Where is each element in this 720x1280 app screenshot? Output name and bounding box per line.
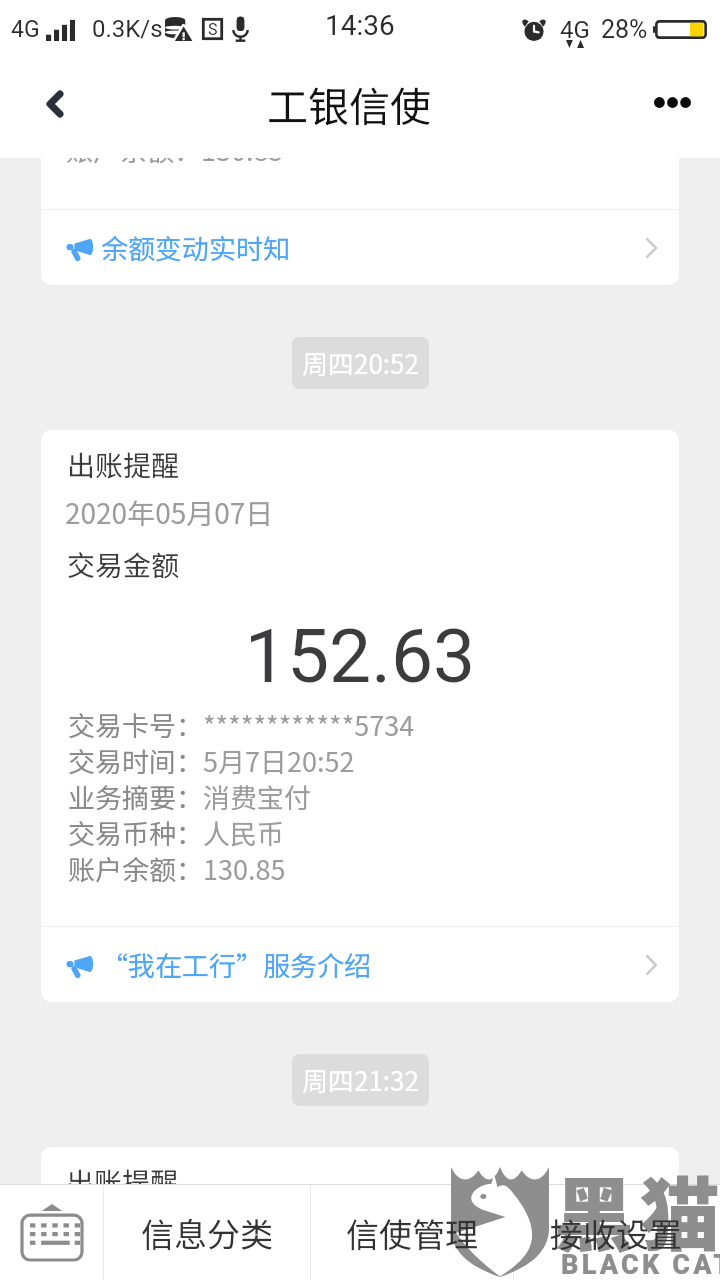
- staticText: 0.3K/s: [92, 15, 163, 43]
- staticText: 接收设置: [550, 1209, 682, 1257]
- button[interactable]: 余额变动实时知: [41, 210, 679, 285]
- staticText: 交易时间：: [68, 741, 203, 780]
- staticText: 交易金额: [67, 544, 180, 585]
- staticText: 工银信使: [267, 74, 431, 133]
- staticText: 出账提醒: [67, 444, 180, 485]
- staticText: 黑猫: [554, 1151, 720, 1267]
- staticText: 账户余额：130.85: [66, 130, 284, 169]
- staticText: 4G: [560, 16, 590, 44]
- staticText: 交易卡号：: [68, 705, 203, 744]
- staticText: 4G: [11, 16, 40, 43]
- staticText: BLACK CAT: [561, 1249, 720, 1280]
- staticText: 28%: [601, 15, 648, 44]
- staticText: 14:36: [325, 9, 395, 42]
- staticText: 信使管理: [346, 1209, 478, 1257]
- staticText: 余额变动实时知: [101, 228, 290, 267]
- staticText: 业务摘要：: [68, 777, 203, 816]
- staticText: 信息分类: [141, 1209, 273, 1257]
- staticText: 周四21:32: [302, 1061, 419, 1099]
- button[interactable]: Keyboard: [0, 1185, 103, 1280]
- staticText: 交易币种：: [68, 813, 203, 852]
- staticText: 账户余额：: [68, 849, 203, 888]
- staticText: 人民币: [203, 813, 284, 852]
- staticText: 消费宝付: [203, 777, 311, 816]
- button[interactable]: “我在工行”服务介绍: [41, 927, 679, 1002]
- staticText: “我在工行”服务介绍: [101, 945, 371, 984]
- staticText: 152.63: [41, 612, 679, 700]
- staticText: S: [208, 20, 218, 39]
- staticText: 周四20:52: [302, 344, 419, 382]
- button[interactable]: 信息分类: [104, 1185, 310, 1280]
- button[interactable]: More options: [610, 58, 720, 158]
- staticText: 5月7日20:52: [203, 741, 355, 780]
- staticText: 出账提醒: [66, 1161, 179, 1202]
- staticText: 2020年05月07日: [65, 492, 274, 533]
- staticText: ************5734: [203, 705, 415, 744]
- button[interactable]: 信使管理: [311, 1185, 512, 1280]
- button[interactable]: 接收设置: [513, 1185, 718, 1280]
- button[interactable]: Back: [0, 58, 110, 158]
- staticText: 130.85: [203, 849, 286, 888]
